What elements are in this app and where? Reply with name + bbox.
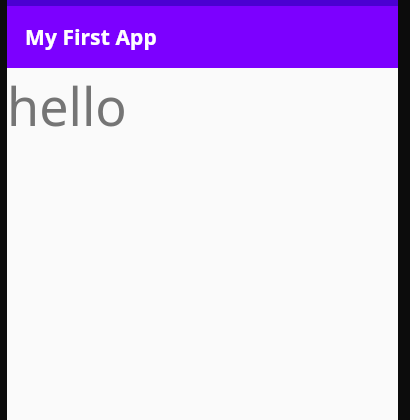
staticText: My First App — [25, 23, 157, 52]
staticText: hello — [7, 70, 127, 141]
button[interactable]: My First App — [7, 6, 398, 68]
